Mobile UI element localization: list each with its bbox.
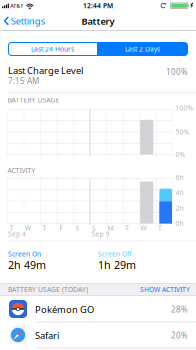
staticText: AT&T (10, 2, 23, 9)
staticText: 0% (175, 150, 185, 159)
staticText: 50% (175, 128, 189, 136)
staticText: Screen Off (98, 250, 132, 258)
staticText: ACTIVITY (7, 166, 35, 175)
staticText: Settings (11, 15, 45, 27)
button[interactable]: SHOW ACTIVITY (120, 283, 190, 295)
staticText: 6h (175, 173, 183, 182)
staticText: 20% (171, 330, 188, 341)
staticText: Sep 4 (8, 229, 26, 238)
staticText: Sep 9 (91, 229, 109, 238)
staticText: W (140, 223, 146, 232)
button[interactable]: Pokémon GO (0, 295, 196, 322)
staticText: 12:44 PM (83, 1, 113, 10)
button[interactable]: Safari (0, 322, 196, 348)
staticText: 28% (171, 304, 188, 315)
staticText: F (59, 223, 62, 232)
staticText: BATTERY USAGE (7, 96, 59, 104)
staticText: T (42, 223, 46, 232)
staticText: 100% (175, 103, 193, 112)
staticText: 2h (175, 204, 183, 213)
button[interactable]: Last 2 Days (98, 42, 187, 56)
staticText: SHOW ACTIVITY (140, 285, 190, 294)
staticText: Last 24 Hours (31, 45, 74, 53)
staticText: T (125, 223, 129, 232)
staticText: T (9, 223, 13, 232)
staticText: 2h 49m (8, 258, 46, 272)
staticText: Last 2 Days (125, 45, 160, 53)
staticText: W (25, 223, 31, 232)
staticText: 7:15 AM (8, 76, 39, 86)
staticText: 4h (175, 188, 183, 197)
staticText: Last Charge Level (8, 64, 83, 77)
staticText: Screen On (8, 250, 41, 258)
staticText: Safari (35, 329, 59, 342)
staticText: S (92, 223, 96, 232)
staticText: BATTERY USAGE (TODAY) (8, 285, 88, 294)
staticText: 100% (166, 67, 188, 77)
button[interactable]: Last 24 Hours (8, 42, 97, 56)
staticText: T (158, 223, 162, 232)
staticText: Pokémon GO (35, 303, 94, 316)
button[interactable]: Back to Settings (0, 11, 44, 32)
staticText: S (75, 223, 79, 232)
staticText: M (107, 223, 113, 232)
staticText: Battery (81, 15, 114, 27)
staticText: 0h (175, 219, 183, 228)
staticText: 1h 29m (98, 258, 136, 272)
